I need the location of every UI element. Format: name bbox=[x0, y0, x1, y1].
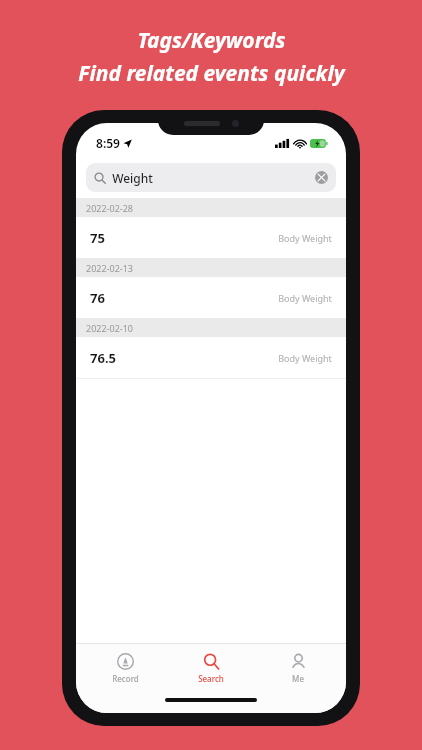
staticText: Body Weight bbox=[278, 292, 332, 304]
staticText: 75 bbox=[90, 229, 105, 247]
staticText: Body Weight bbox=[278, 352, 332, 364]
button[interactable]: Me bbox=[260, 649, 336, 688]
staticText: 76 bbox=[90, 289, 105, 307]
staticText: Me bbox=[292, 673, 304, 684]
button[interactable]: 75 bbox=[76, 217, 346, 258]
button[interactable]: Search bbox=[173, 649, 249, 688]
staticText: Weight bbox=[112, 170, 153, 186]
staticText: 2022-02-10 bbox=[86, 322, 133, 334]
button[interactable]: 76.5 bbox=[76, 337, 346, 378]
button[interactable]: 76 bbox=[76, 277, 346, 318]
button[interactable]: Record bbox=[87, 649, 163, 688]
button[interactable]: Weight bbox=[86, 163, 336, 192]
staticText: 76.5 bbox=[90, 349, 116, 367]
staticText: Search bbox=[198, 673, 224, 684]
button[interactable]: Clear search bbox=[315, 171, 328, 184]
staticText: Body Weight bbox=[278, 232, 332, 244]
staticText: 8:59 bbox=[96, 135, 120, 151]
staticText: 2022-02-28 bbox=[86, 202, 133, 214]
staticText: 2022-02-13 bbox=[86, 262, 133, 274]
staticText: Record bbox=[112, 673, 139, 684]
staticText: Tags/Keywords bbox=[137, 26, 286, 55]
staticText: Find related events quickly bbox=[78, 59, 345, 88]
